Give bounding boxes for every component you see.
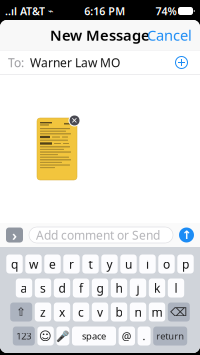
button[interactable]: g bbox=[92, 278, 108, 297]
staticText: To: bbox=[8, 54, 24, 70]
button[interactable]: h bbox=[111, 278, 127, 297]
button[interactable]: Cancel bbox=[139, 19, 200, 51]
staticText: 6:16 PM bbox=[84, 4, 125, 18]
staticText: a bbox=[20, 280, 27, 296]
button[interactable]: e bbox=[44, 254, 61, 273]
staticText: y bbox=[106, 256, 112, 272]
staticText: @ bbox=[122, 329, 132, 343]
button[interactable]: t bbox=[82, 254, 99, 273]
button[interactable]: App drawer bbox=[6, 225, 23, 245]
button[interactable]: b bbox=[111, 302, 127, 321]
button[interactable]: j bbox=[130, 278, 146, 297]
button[interactable]: v bbox=[92, 302, 108, 321]
button[interactable]: c bbox=[73, 302, 89, 321]
staticText: c bbox=[78, 304, 84, 320]
button[interactable]: x bbox=[54, 302, 70, 321]
staticText: z bbox=[40, 304, 46, 320]
staticText: s bbox=[40, 280, 46, 296]
button[interactable]: @ bbox=[119, 326, 135, 345]
staticText: l bbox=[174, 280, 177, 296]
staticText: space bbox=[82, 330, 106, 342]
staticText: i bbox=[146, 256, 149, 272]
button[interactable]: Remove attachment bbox=[68, 114, 81, 127]
button[interactable]: n bbox=[130, 302, 146, 321]
button[interactable]: ⌫ bbox=[168, 302, 190, 321]
button[interactable]: Send bbox=[179, 227, 194, 242]
button[interactable]: o bbox=[158, 254, 175, 273]
staticText: w bbox=[29, 256, 38, 272]
button[interactable]: z bbox=[35, 302, 51, 321]
staticText: 74% bbox=[155, 4, 176, 18]
staticText: t bbox=[88, 256, 92, 272]
staticText: f bbox=[79, 280, 83, 296]
button[interactable]: w bbox=[25, 254, 42, 273]
button[interactable]: space bbox=[72, 326, 116, 345]
staticText: h bbox=[115, 280, 122, 296]
button[interactable]: f bbox=[73, 278, 89, 297]
button[interactable]: l bbox=[168, 278, 184, 297]
staticText: x bbox=[59, 304, 65, 320]
button[interactable]: Add comment or Send bbox=[29, 227, 173, 243]
button[interactable]: a bbox=[16, 278, 32, 297]
staticText: b bbox=[115, 304, 122, 320]
button[interactable]: y bbox=[101, 254, 118, 273]
staticText: 🎤 bbox=[56, 330, 69, 342]
button[interactable]: 🎤 bbox=[56, 326, 69, 345]
staticText: u bbox=[125, 256, 132, 272]
staticText: New Message bbox=[50, 25, 150, 45]
staticText: ⌁ bbox=[45, 6, 54, 16]
button[interactable]: i bbox=[139, 254, 156, 273]
button[interactable]: return bbox=[153, 326, 187, 345]
staticText: Warner Law MO bbox=[24, 54, 120, 70]
staticText: e bbox=[49, 256, 56, 272]
staticText: p bbox=[182, 256, 189, 272]
button[interactable]: s bbox=[35, 278, 51, 297]
staticText: q bbox=[11, 256, 18, 272]
staticText: ..ıl AT&T bbox=[5, 4, 45, 18]
staticText: ⇧ bbox=[16, 305, 26, 319]
button[interactable]: ⇧ bbox=[10, 302, 32, 321]
staticText: ↑ bbox=[181, 228, 191, 242]
button[interactable]: k bbox=[149, 278, 165, 297]
staticText: g bbox=[96, 280, 103, 296]
button[interactable]: 123 bbox=[13, 326, 35, 345]
staticText: o bbox=[163, 256, 170, 272]
button[interactable]: p bbox=[177, 254, 194, 273]
button[interactable]: u bbox=[120, 254, 137, 273]
button[interactable]: . bbox=[138, 326, 151, 345]
button[interactable]: ☺ bbox=[37, 326, 54, 345]
staticText: v bbox=[97, 304, 103, 320]
staticText: n bbox=[134, 304, 141, 320]
button[interactable]: q bbox=[6, 254, 23, 273]
staticText: j bbox=[136, 280, 139, 296]
staticText: Cancel bbox=[147, 25, 192, 45]
staticText: k bbox=[154, 280, 160, 296]
staticText: ⌫ bbox=[170, 305, 187, 319]
staticText: ✕ bbox=[71, 116, 78, 125]
staticText: d bbox=[58, 280, 65, 296]
button[interactable]: d bbox=[54, 278, 70, 297]
staticText: m bbox=[151, 304, 162, 320]
staticText: r bbox=[69, 256, 74, 272]
button[interactable]: m bbox=[149, 302, 165, 321]
staticText: return bbox=[156, 330, 184, 342]
staticText: › bbox=[12, 225, 17, 245]
button[interactable]: Add contact bbox=[171, 52, 192, 73]
button[interactable]: r bbox=[63, 254, 80, 273]
staticText: Add comment or Send bbox=[36, 227, 160, 243]
staticText: . bbox=[143, 329, 146, 343]
staticText: 123 bbox=[16, 330, 31, 342]
staticText: ☺ bbox=[39, 329, 52, 343]
